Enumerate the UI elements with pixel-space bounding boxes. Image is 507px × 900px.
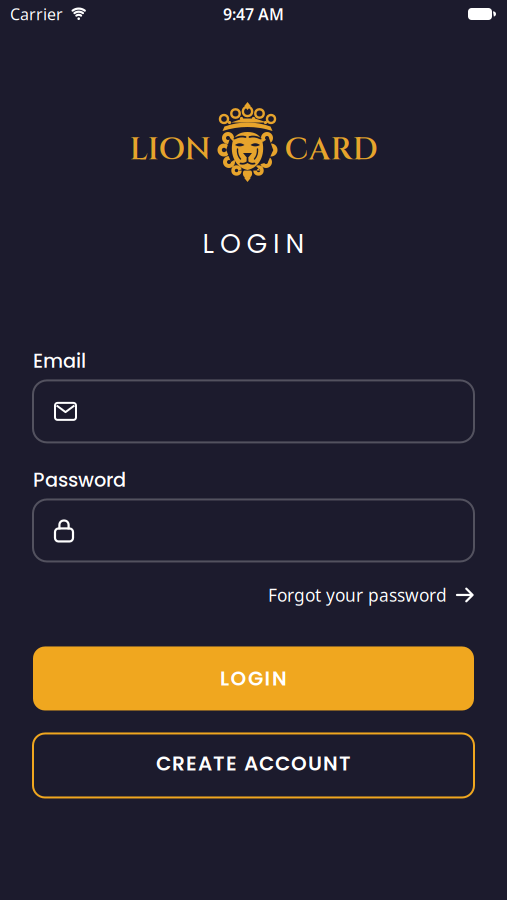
button[interactable]: LOGIN	[33, 646, 474, 710]
staticText: Carrier	[10, 3, 63, 25]
staticText: Password	[33, 466, 126, 493]
button[interactable]: Forgot your password	[268, 583, 474, 606]
staticText: 9:47 AM	[223, 3, 284, 25]
staticText: Forgot your password	[268, 583, 447, 606]
staticText: Email	[33, 347, 86, 374]
staticText: CREATE ACCOUNT	[156, 749, 351, 777]
staticText: LION	[129, 129, 210, 171]
button[interactable]: CREATE ACCOUNT	[33, 733, 474, 797]
staticText: CARD	[284, 129, 377, 171]
staticText: LOGIN	[202, 225, 304, 262]
staticText: LOGIN	[220, 664, 287, 692]
